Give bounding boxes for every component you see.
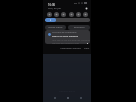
- button[interactable]: Flashlight: [69, 12, 74, 17]
- button[interactable]: Back: [53, 96, 57, 100]
- button[interactable]: Bluetooth: [54, 12, 59, 17]
- button[interactable]: Internet: [47, 12, 52, 17]
- button[interactable]: Settings: [85, 7, 88, 10]
- button[interactable]: Do not disturb: [61, 12, 66, 17]
- button[interactable]: Recents: [79, 96, 83, 100]
- button[interactable]: Bluetooth: [68, 25, 90, 30]
- staticText: Sign in to Wi-Fi network: [52, 35, 78, 38]
- staticText: 4G: [74, 2, 77, 4]
- staticText: Your sign-in info was detected. Tap to f…: [52, 39, 90, 42]
- button[interactable]: Brightness: [45, 18, 90, 22]
- staticText: Mobile signal: [48, 26, 63, 29]
- button[interactable]: Auto-rotate: [76, 12, 81, 17]
- staticText: Sun, 25 Jun: [48, 6, 62, 9]
- staticText: the issue and reconnect now.: [52, 42, 80, 44]
- staticText: Bluetooth: [74, 26, 85, 29]
- button[interactable]: Clear: [84, 47, 90, 50]
- button[interactable]: Mobile signal: [45, 25, 66, 30]
- staticText: 16:06: [48, 3, 56, 7]
- button[interactable]: Notification settings: [60, 47, 81, 50]
- button[interactable]: Wi-Fi may be unavailable: [45, 30, 90, 44]
- button[interactable]: Battery saver: [83, 12, 88, 17]
- staticText: Wi-Fi may be unavailable: [52, 31, 77, 34]
- button[interactable]: Home: [66, 96, 70, 100]
